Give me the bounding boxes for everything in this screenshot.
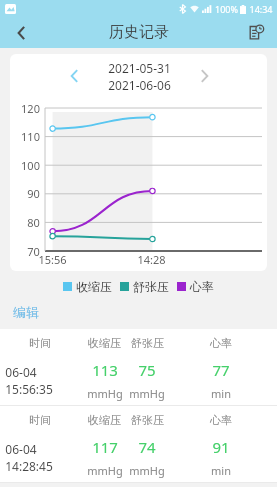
- staticText: 时间: [29, 336, 51, 350]
- staticText: 舒张压: [131, 336, 164, 350]
- staticText: 80: [27, 215, 40, 230]
- staticText: 14:28:45: [5, 458, 53, 474]
- staticText: 110: [21, 129, 40, 144]
- staticText: 2021-06-06: [108, 77, 171, 93]
- button[interactable]: Back: [0, 17, 42, 48]
- staticText: 心率: [210, 336, 232, 350]
- button[interactable]: 编辑: [13, 304, 39, 320]
- button[interactable]: 时间: [0, 406, 277, 483]
- staticText: 06-04: [5, 364, 37, 380]
- staticText: 2021-05-31: [108, 60, 171, 76]
- staticText: 舒张压: [133, 279, 169, 294]
- staticText: 收缩压: [76, 279, 112, 294]
- staticText: 编辑: [13, 304, 39, 320]
- staticText: 100%: [215, 3, 238, 15]
- staticText: 77: [212, 360, 230, 380]
- staticText: 14:34: [249, 3, 273, 15]
- staticText: 收缩压: [88, 336, 121, 350]
- button[interactable]: 时间: [0, 329, 277, 406]
- staticText: 心率: [210, 413, 232, 427]
- staticText: mmHg: [87, 463, 123, 478]
- staticText: 117: [92, 437, 118, 457]
- staticText: 15:56: [38, 252, 67, 267]
- staticText: 113: [92, 360, 118, 380]
- staticText: 100: [21, 158, 40, 173]
- staticText: 舒张压: [131, 413, 164, 427]
- staticText: 06-04: [5, 441, 37, 457]
- staticText: min: [211, 386, 231, 401]
- staticText: 91: [212, 437, 230, 457]
- staticText: 70: [27, 244, 40, 259]
- button[interactable]: Next week: [186, 58, 222, 94]
- staticText: 120: [21, 101, 40, 116]
- staticText: 时间: [29, 413, 51, 427]
- staticText: 74: [138, 437, 156, 457]
- staticText: mmHg: [129, 386, 165, 401]
- button[interactable]: Export records: [235, 17, 277, 48]
- staticText: 15:56:35: [5, 381, 53, 397]
- staticText: 心率: [190, 279, 214, 294]
- staticText: min: [211, 463, 231, 478]
- staticText: mmHg: [129, 463, 165, 478]
- staticText: mmHg: [87, 386, 123, 401]
- staticText: 历史记录: [109, 23, 169, 42]
- staticText: 75: [138, 360, 156, 380]
- staticText: 14:28: [137, 252, 166, 267]
- staticText: 收缩压: [88, 413, 121, 427]
- button[interactable]: Previous week: [56, 58, 92, 94]
- staticText: 90: [27, 186, 40, 201]
